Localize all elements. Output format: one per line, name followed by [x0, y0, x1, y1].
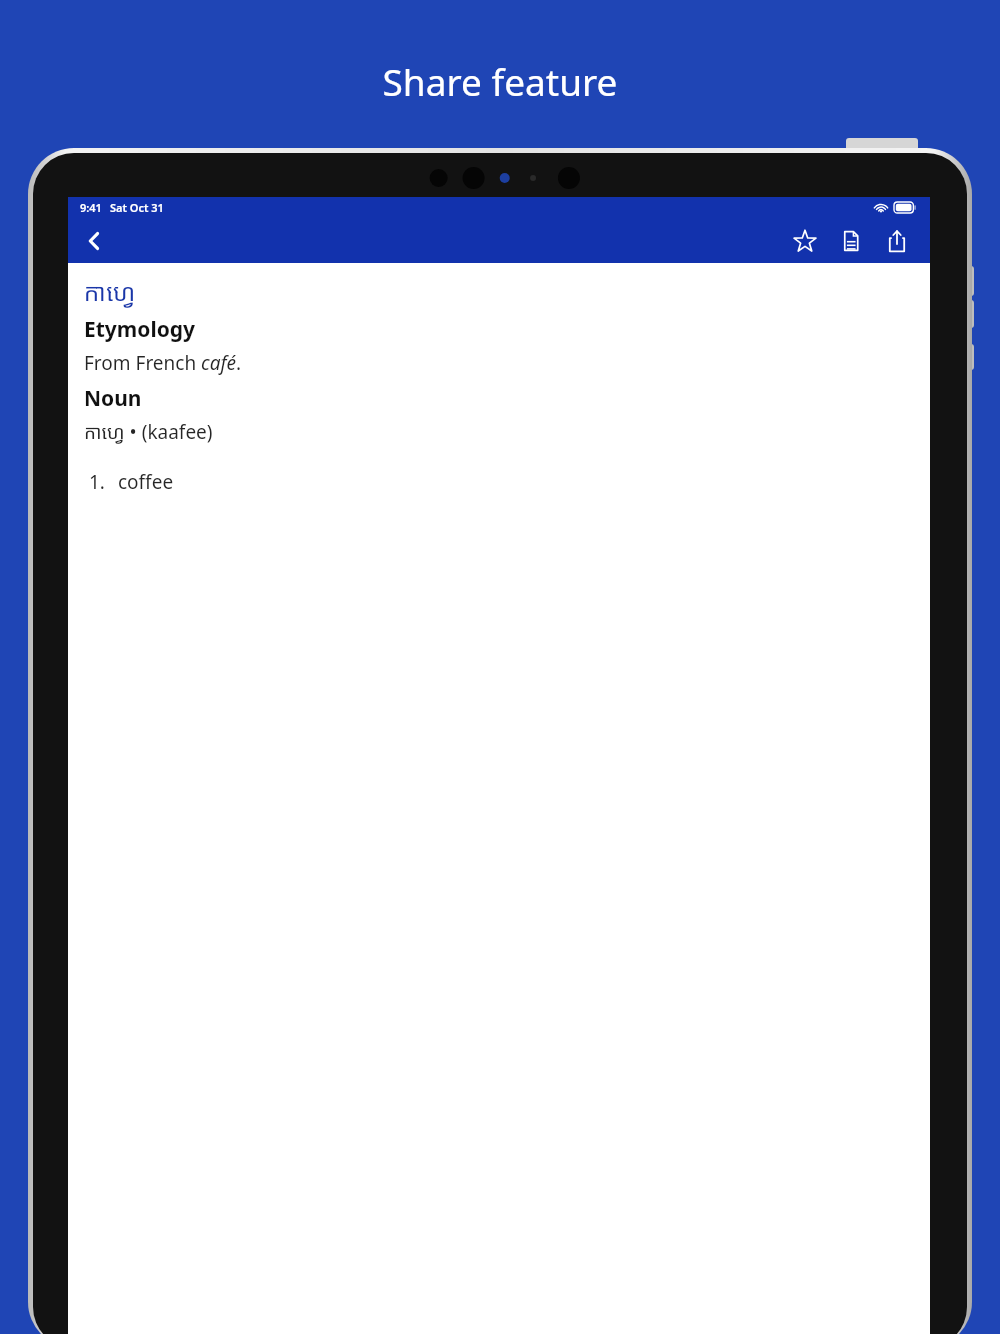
staticText: Share feature — [0, 56, 1000, 106]
staticText: coffee — [118, 469, 174, 495]
button[interactable]: Document — [830, 220, 872, 262]
button[interactable]: Back — [74, 221, 114, 261]
staticText: កាហ្វេ — [84, 275, 136, 308]
button[interactable]: Share — [876, 220, 918, 262]
staticText: 9:41 — [80, 200, 102, 215]
button[interactable]: Add to favorites — [784, 220, 826, 262]
staticText: 1. — [89, 469, 105, 495]
staticText: Etymology — [84, 315, 196, 344]
staticText: Sat Oct 31 — [110, 200, 164, 215]
staticText: From French café. — [84, 350, 242, 376]
staticText: កាហ្វេ • (kaafee) — [84, 419, 213, 445]
staticText: Noun — [84, 384, 142, 413]
